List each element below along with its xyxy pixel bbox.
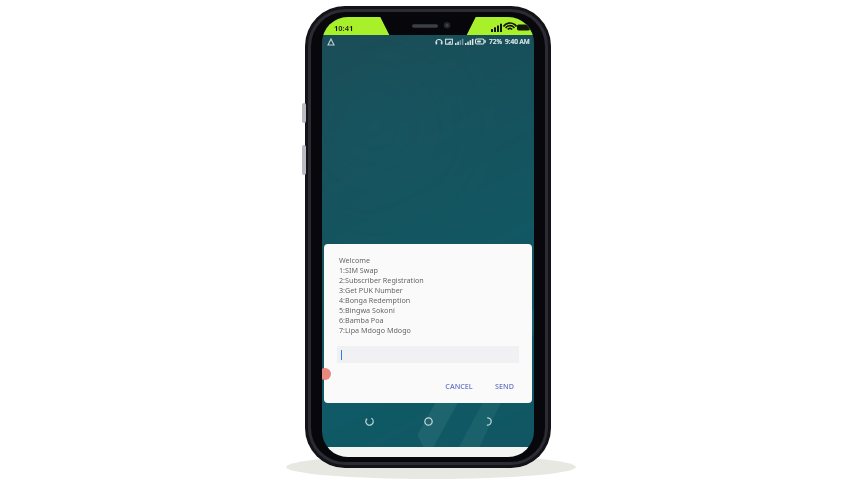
button[interactable]: CANCEL: [439, 377, 479, 395]
button[interactable]: Recent apps: [357, 409, 381, 433]
staticText: CANCEL: [445, 381, 473, 391]
staticText: 72%: [489, 37, 502, 46]
staticText: 3:Get PUK Number: [339, 285, 403, 295]
staticText: 6:Bamba Poa: [339, 315, 384, 325]
button[interactable]: [337, 346, 519, 363]
staticText: 10:41: [334, 23, 354, 33]
staticText: 9:40 AM: [505, 37, 530, 46]
staticText: 4:Bonga Redemption: [339, 295, 411, 305]
staticText: Welcome: [339, 255, 371, 265]
staticText: 5:Bingwa Sokoni: [339, 305, 395, 315]
button[interactable]: Back: [475, 409, 499, 433]
button[interactable]: SEND: [489, 377, 520, 395]
staticText: SEND: [495, 381, 514, 391]
button[interactable]: Home: [416, 409, 440, 433]
staticText: 1:SIM Swap: [339, 265, 378, 275]
staticText: 7:Lipa Mdogo Mdogo: [339, 325, 411, 335]
staticText: 2:Subscriber Registration: [339, 275, 424, 285]
